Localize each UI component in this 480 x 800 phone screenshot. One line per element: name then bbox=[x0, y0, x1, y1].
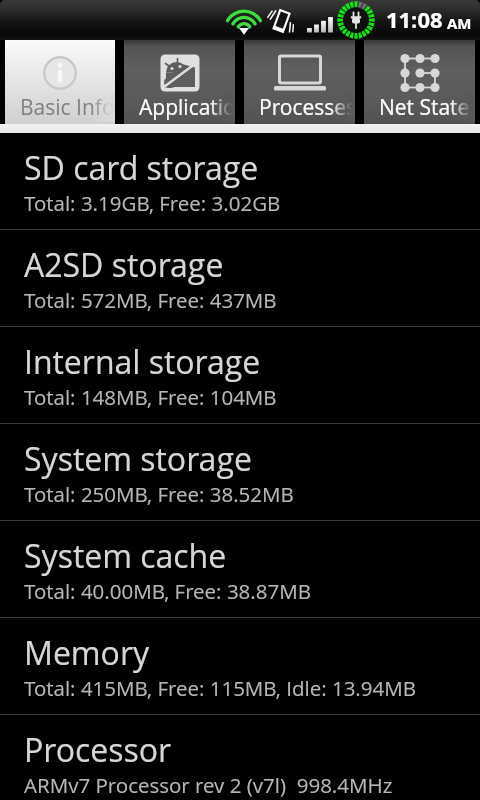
staticText: Total: 148MB, Free: 104MB bbox=[24, 383, 277, 411]
staticText: A2SD storage bbox=[24, 243, 224, 287]
button[interactable]: Basic Info bbox=[5, 40, 115, 124]
button[interactable]: Processor bbox=[0, 715, 480, 800]
staticText: Total: 415MB, Free: 115MB, Idle: 13.94MB bbox=[24, 674, 417, 702]
staticText: 11:08 bbox=[386, 4, 443, 34]
staticText: Applications bbox=[139, 93, 235, 122]
button[interactable]: Internal storage bbox=[0, 327, 480, 423]
button[interactable]: A2SD storage bbox=[0, 230, 480, 326]
button[interactable]: Memory bbox=[0, 618, 480, 714]
staticText: Processor bbox=[24, 728, 172, 772]
staticText: Total: 572MB, Free: 437MB bbox=[24, 286, 277, 314]
staticText: System storage bbox=[24, 437, 252, 481]
staticText: Total: 3.19GB, Free: 3.02GB bbox=[24, 189, 281, 217]
staticText: Memory bbox=[24, 631, 150, 675]
staticText: Net State bbox=[379, 93, 470, 122]
staticText: Total: 40.00MB, Free: 38.87MB bbox=[24, 577, 312, 605]
staticText: SD card storage bbox=[24, 146, 259, 190]
button[interactable]: Net State bbox=[364, 40, 475, 124]
button[interactable]: System storage bbox=[0, 424, 480, 520]
staticText: Total: 250MB, Free: 38.52MB bbox=[24, 480, 294, 508]
button[interactable]: Applications bbox=[124, 40, 235, 124]
staticText: Basic Info bbox=[20, 93, 115, 122]
staticText: ARMv7 Processor rev 2 (v7l) 998.4MHz bbox=[24, 771, 393, 799]
staticText: AM bbox=[447, 13, 472, 33]
button[interactable]: Processes bbox=[244, 40, 355, 124]
button[interactable]: System cache bbox=[0, 521, 480, 617]
button[interactable]: SD card storage bbox=[0, 133, 480, 229]
staticText: Internal storage bbox=[24, 340, 261, 384]
staticText: System cache bbox=[24, 534, 227, 578]
staticText: Processes bbox=[259, 93, 355, 122]
